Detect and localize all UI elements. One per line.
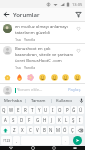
button[interactable]: Paylaş [67, 87, 82, 93]
button[interactable]: Yanıtla [24, 37, 36, 42]
button[interactable]: Beğen [74, 24, 82, 32]
staticText: Yorum ekle... [17, 87, 43, 93]
staticText: V [36, 127, 39, 133]
button[interactable]: J [49, 116, 55, 124]
button[interactable]: Y [36, 106, 42, 114]
button[interactable]: N [48, 126, 54, 134]
button[interactable]: Virgül [13, 136, 20, 145]
button[interactable]: Geri [0, 8, 13, 21]
button[interactable]: Q [1, 106, 7, 114]
button[interactable]: ?123 [1, 136, 12, 145]
button[interactable]: A [2, 116, 9, 124]
staticText: ?123 [3, 138, 11, 143]
staticText: C [29, 127, 32, 133]
button[interactable]: M [55, 126, 61, 134]
button[interactable]: L [63, 116, 69, 124]
button[interactable]: P [64, 106, 70, 114]
button[interactable]: B [41, 126, 47, 134]
button[interactable]: Merhaba [0, 98, 25, 104]
staticText: B [43, 127, 46, 133]
staticText: Ş [72, 117, 75, 123]
button[interactable]: C [27, 126, 33, 134]
button[interactable]: Tamam [26, 98, 51, 104]
button[interactable]: Emoji tepkisi [3, 73, 12, 82]
staticText: Paylaş [68, 87, 81, 93]
button[interactable]: Yanıtla [24, 65, 36, 70]
button[interactable]: Shift [1, 126, 10, 134]
button[interactable]: E [15, 106, 21, 114]
button[interactable]: Nokta [62, 136, 69, 145]
button[interactable]: I [77, 116, 83, 124]
staticText: en mutluz olmayı anlamayı tatarlarım güz… [15, 24, 74, 36]
staticText: L [65, 117, 68, 123]
staticText: 13:05 [72, 2, 83, 7]
button[interactable]: Ö [62, 126, 68, 134]
button[interactable]: G [34, 116, 41, 124]
staticText: Ü [79, 107, 83, 113]
button[interactable]: I [50, 106, 56, 114]
staticText: Ö [63, 127, 67, 133]
button[interactable]: Son kullanılanlar [43, 146, 64, 150]
button[interactable]: K [56, 116, 62, 124]
staticText: I [79, 117, 81, 123]
button[interactable]: D [18, 116, 25, 124]
button[interactable]: Geri sil [76, 126, 84, 134]
button[interactable]: T [29, 106, 35, 114]
staticText: A [4, 117, 7, 123]
staticText: . [65, 138, 67, 144]
button[interactable]: Emoji tepkisi [26, 73, 35, 82]
button[interactable]: Sırala [72, 8, 85, 21]
staticText: 1sa [15, 65, 21, 70]
button[interactable]: S [10, 116, 17, 124]
button[interactable]: U [43, 106, 49, 114]
staticText: Tamam [31, 98, 46, 104]
staticText: Ç [71, 127, 74, 133]
button[interactable]: Z [11, 126, 18, 134]
staticText: Kullanıcı [56, 98, 73, 104]
button[interactable]: H [42, 116, 48, 124]
button[interactable]: Ş [70, 116, 76, 124]
button[interactable]: Ana ekran [22, 146, 43, 150]
button[interactable]: Ç [69, 126, 75, 134]
button[interactable]: Ü [78, 106, 84, 114]
button[interactable]: Sesle yaz [77, 98, 85, 103]
staticText: Ğ [72, 107, 76, 113]
button[interactable]: Emoji tepkisi [50, 73, 59, 82]
staticText: J [51, 117, 53, 123]
button[interactable]: Ğ [71, 106, 77, 114]
staticText: Yanıtla [24, 37, 36, 42]
staticText: 1sa [15, 37, 21, 42]
button[interactable]: Emoji tepkisi [15, 73, 24, 82]
button[interactable]: Emoji tepkisi [73, 73, 82, 82]
button[interactable]: F [26, 116, 33, 124]
button[interactable]: Geri [0, 146, 22, 150]
button[interactable]: Emoji tepkisi [38, 73, 47, 82]
staticText: Z [13, 127, 16, 133]
staticText: , [16, 138, 18, 144]
button[interactable]: X [19, 126, 26, 134]
staticText: S [12, 117, 15, 123]
staticText: Y [38, 107, 41, 113]
button[interactable]: V [34, 126, 40, 134]
button[interactable]: Beğen [74, 46, 82, 54]
button[interactable]: Emoji tepkisi [61, 73, 70, 82]
button[interactable]: W [8, 106, 14, 114]
button[interactable]: R [22, 106, 28, 114]
staticText: Bonushoot en çok kazandıran, sitede ve ş… [15, 46, 74, 64]
button[interactable]: Klavyeyi kapat [64, 146, 85, 150]
staticText: W [9, 107, 14, 113]
staticText: P [66, 107, 69, 113]
staticText: R [24, 107, 27, 113]
staticText: Q [2, 107, 6, 113]
staticText: I [52, 107, 54, 113]
staticText: U [44, 107, 48, 113]
staticText: F [28, 117, 31, 123]
staticText: E [17, 107, 20, 113]
button[interactable]: O [57, 106, 63, 114]
button[interactable]: Kullanıcı [52, 98, 77, 104]
button[interactable]: Yorum ekle... [15, 87, 67, 93]
staticText: O [58, 107, 62, 113]
button[interactable]: Gönder [73, 136, 82, 145]
staticText: D [20, 117, 24, 123]
